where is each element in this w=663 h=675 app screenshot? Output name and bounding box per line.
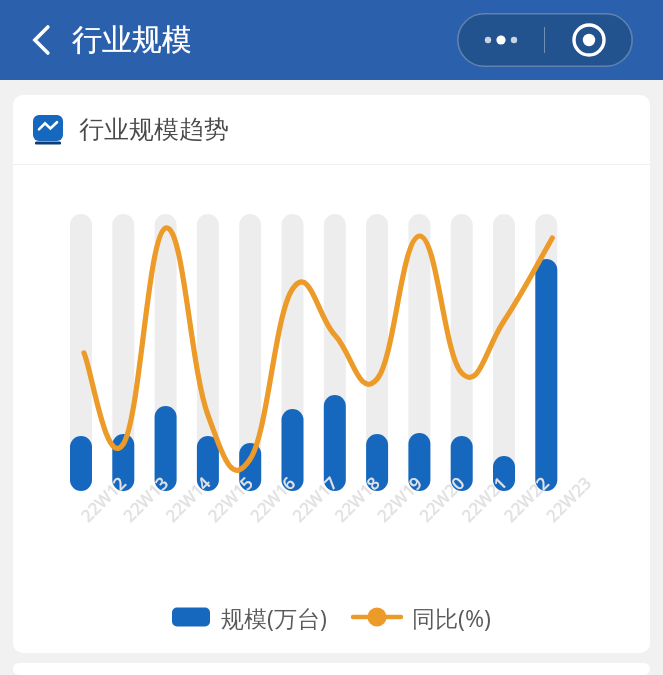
- button[interactable]: 行业规模趋势: [13, 95, 650, 164]
- button[interactable]: Back: [18, 18, 62, 62]
- staticText: 行业规模: [72, 21, 192, 59]
- button[interactable]: Menu and close: [457, 13, 633, 67]
- staticText: 行业规模趋势: [79, 114, 229, 145]
